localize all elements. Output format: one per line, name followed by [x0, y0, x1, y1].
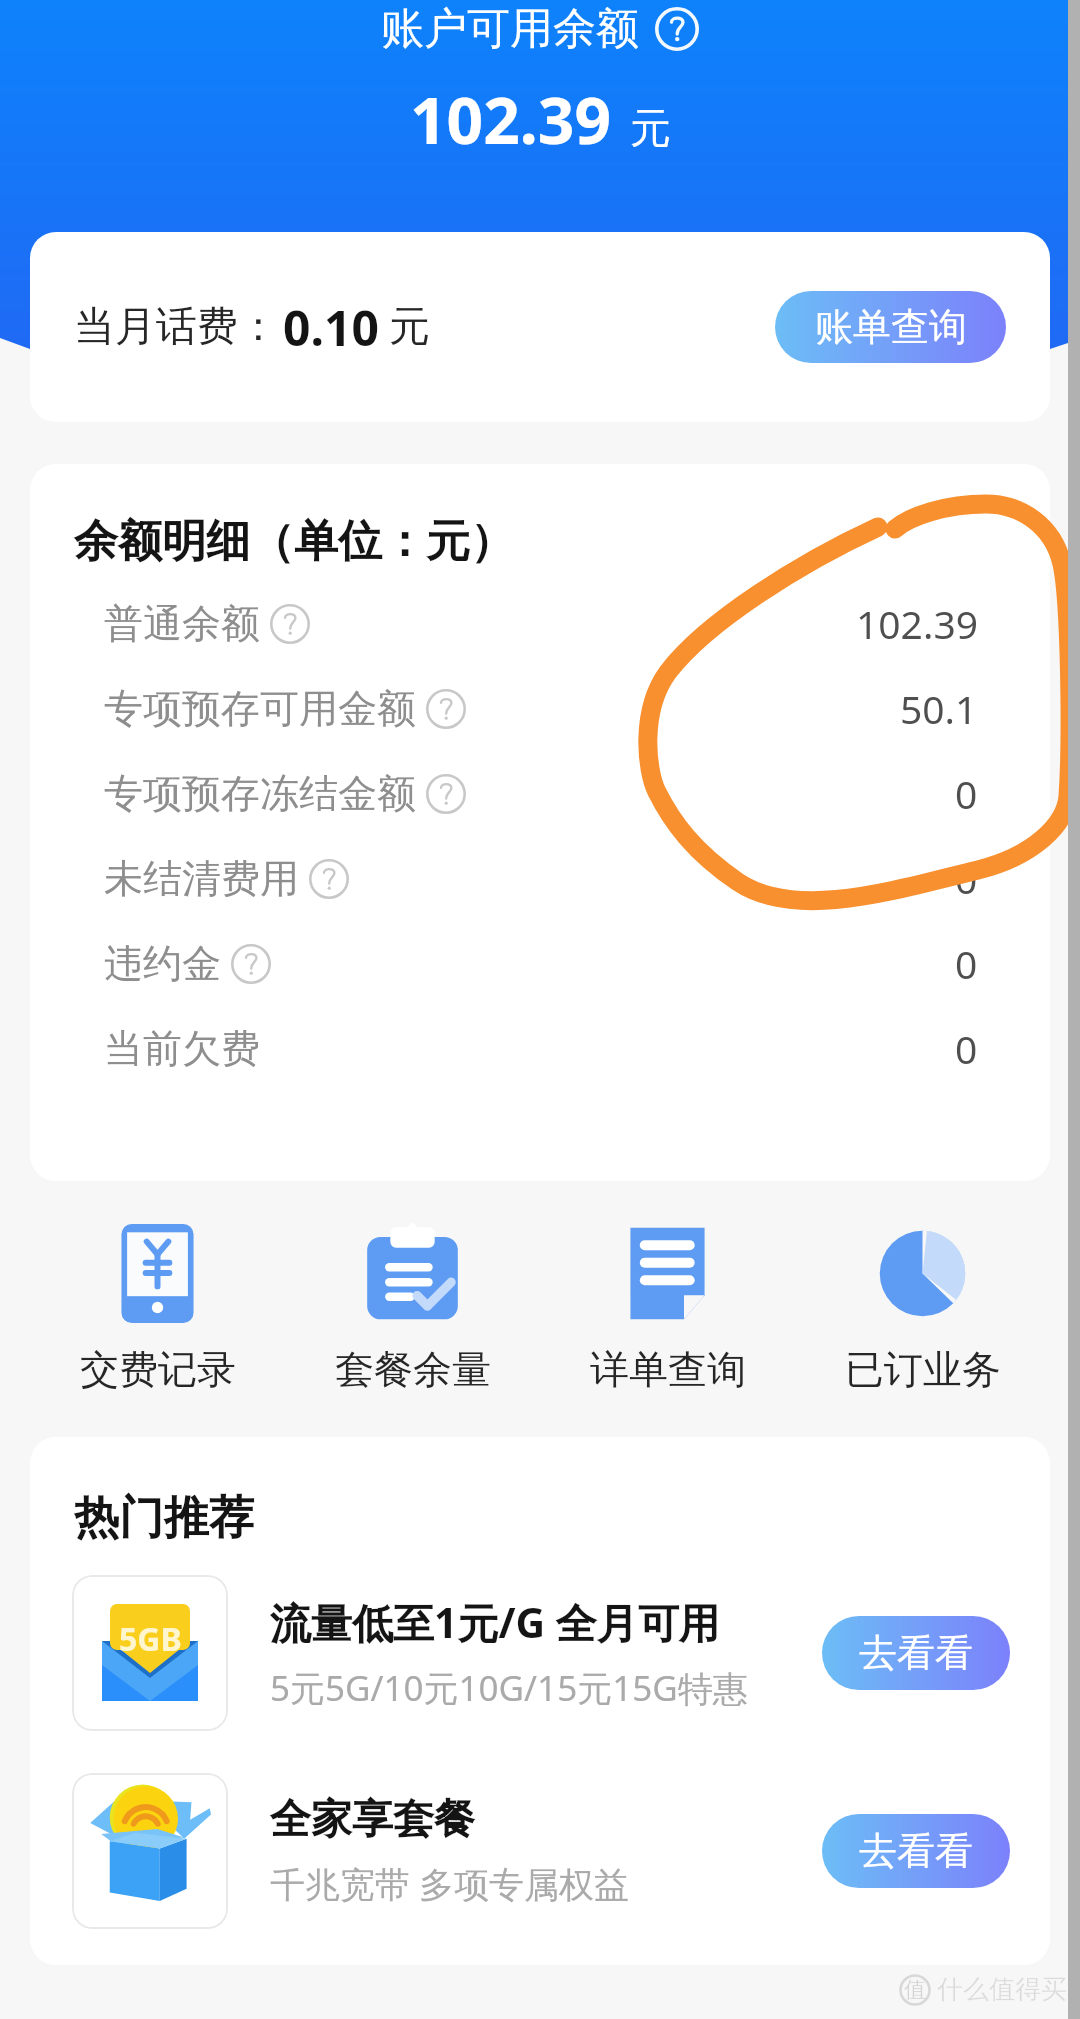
button[interactable]: 普通余额说明	[270, 604, 310, 644]
staticText: 普通余额	[104, 599, 260, 648]
button[interactable]: 5GB	[72, 1575, 1010, 1731]
staticText: 0	[955, 852, 978, 905]
staticText: 0	[955, 937, 978, 990]
staticText: 账户可用余额	[381, 2, 639, 56]
staticText: 102.39	[856, 597, 978, 650]
staticText: 102.39	[410, 76, 612, 163]
button[interactable]: 套餐余量	[285, 1214, 540, 1414]
staticText: 详单查询	[590, 1345, 746, 1394]
staticText: 流量低至1元/G 全月可用	[270, 1594, 720, 1650]
staticText: 未结清费用	[104, 854, 299, 903]
staticText: 千兆宽带 多项专属权益	[270, 1860, 630, 1908]
button[interactable]: 全家享套餐	[72, 1773, 1010, 1929]
staticText: 5GB	[119, 1617, 182, 1661]
button[interactable]: 去看看	[822, 1814, 1010, 1888]
staticText: 元	[630, 103, 671, 155]
button[interactable]: 交费记录	[30, 1214, 285, 1414]
button[interactable]: 当前欠费	[104, 1006, 978, 1091]
button[interactable]: 账单查询	[775, 291, 1006, 363]
staticText: 0	[955, 767, 978, 820]
staticText: 去看看	[859, 1827, 973, 1875]
staticText: 已订业务	[845, 1345, 1001, 1394]
staticText: 当前欠费	[104, 1024, 260, 1073]
button[interactable]: 专项预存可用金额	[104, 666, 978, 751]
button[interactable]: 去看看	[822, 1616, 1010, 1690]
staticText: 专项预存冻结金额	[104, 769, 416, 818]
button[interactable]: 普通余额	[104, 581, 978, 666]
staticText: 交费记录	[80, 1345, 236, 1394]
staticText: 什么值得买	[937, 1973, 1067, 2006]
staticText: 违约金	[104, 939, 221, 988]
button[interactable]: 已订业务	[795, 1214, 1050, 1414]
staticText: 0.10	[283, 295, 379, 360]
staticText: 5元5G/10元10G/15元15G特惠	[270, 1664, 748, 1712]
staticText: 50.1	[900, 682, 978, 735]
staticText: 元	[389, 301, 430, 353]
button[interactable]: 专项预存冻结金额说明	[426, 774, 466, 814]
staticText: 当月话费：	[74, 301, 279, 353]
staticText: 全家享套餐	[270, 1794, 475, 1846]
staticText: 热门推荐	[74, 1490, 254, 1547]
staticText: 余额明细（单位：元）	[74, 514, 514, 569]
staticText: 去看看	[859, 1629, 973, 1677]
staticText: 账单查询	[815, 303, 967, 351]
button[interactable]: 未结清费用说明	[309, 859, 349, 899]
button[interactable]: 专项预存可用金额说明	[426, 689, 466, 729]
staticText: 套餐余量	[335, 1345, 491, 1394]
button[interactable]: 详单查询	[540, 1214, 795, 1414]
button[interactable]: 专项预存冻结金额	[104, 751, 978, 836]
staticText: 值	[904, 1976, 926, 2004]
staticText: 专项预存可用金额	[104, 684, 416, 733]
button[interactable]: 账户可用余额说明	[655, 7, 699, 51]
button[interactable]: 未结清费用	[104, 836, 978, 921]
button[interactable]: 违约金	[104, 921, 978, 1006]
button[interactable]: 违约金说明	[231, 944, 271, 984]
staticText: 0	[955, 1022, 978, 1075]
